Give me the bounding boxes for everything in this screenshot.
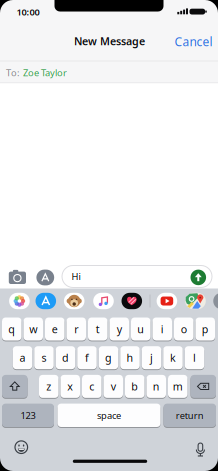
button[interactable]: Digital Touch (121, 293, 142, 309)
staticText: b (131, 379, 138, 393)
button[interactable]: p (195, 317, 215, 340)
button[interactable]: m (168, 375, 187, 398)
staticText: q (8, 322, 15, 336)
button[interactable]: Cancel (174, 33, 212, 49)
button[interactable]: Shift (2, 375, 27, 398)
button[interactable]: Emoji (15, 441, 28, 453)
button[interactable]: v (103, 375, 123, 398)
staticText: s (41, 351, 46, 365)
button[interactable]: Music (93, 293, 114, 309)
button[interactable]: o (174, 317, 193, 340)
button[interactable]: Dictation (195, 443, 206, 457)
staticText: o (181, 322, 187, 336)
staticText: w (29, 322, 37, 336)
button[interactable]: t (88, 317, 107, 340)
button[interactable]: e (45, 317, 64, 340)
button[interactable]: g (99, 346, 118, 369)
button[interactable]: Camera (7, 269, 28, 286)
staticText: d (62, 351, 69, 365)
button[interactable]: Send (190, 270, 206, 285)
staticText: f (85, 351, 89, 365)
staticText: k (170, 351, 176, 365)
staticText: return (176, 409, 204, 421)
staticText: 10:00 (16, 6, 39, 18)
button[interactable]: Photos (9, 293, 30, 309)
staticText: m (173, 379, 183, 393)
button[interactable]: l (185, 346, 204, 369)
button[interactable]: iMessage apps (35, 269, 55, 286)
button[interactable]: Delete (190, 375, 216, 398)
staticText: space (97, 409, 121, 421)
staticText: z (46, 379, 51, 393)
staticText: r (74, 322, 78, 336)
button[interactable]: u (131, 317, 150, 340)
button[interactable]: 123 (2, 404, 54, 427)
staticText: To: (6, 66, 20, 79)
button[interactable]: q (2, 317, 21, 340)
staticText: h (126, 351, 133, 365)
button[interactable]: Animoji (64, 293, 84, 309)
button[interactable]: f (77, 346, 97, 369)
button[interactable]: k (163, 346, 183, 369)
staticText: v (111, 379, 116, 393)
button[interactable]: d (56, 346, 75, 369)
button[interactable]: r (66, 317, 86, 340)
staticText: g (105, 351, 112, 365)
staticText: t (96, 322, 100, 336)
staticText: Hi (71, 270, 80, 282)
staticText: j (150, 351, 153, 365)
staticText: c (89, 379, 94, 393)
button[interactable]: b (125, 375, 144, 398)
button[interactable]: Maps (185, 293, 206, 309)
button[interactable]: space (57, 404, 160, 427)
staticText: Cancel (174, 33, 212, 49)
staticText: p (202, 322, 209, 336)
button[interactable]: c (82, 375, 101, 398)
staticText: n (153, 379, 160, 393)
staticText: New Message (74, 34, 145, 48)
button[interactable]: h (120, 346, 140, 369)
staticText: l (193, 351, 196, 365)
staticText: 123 (20, 409, 35, 421)
button[interactable]: s (34, 346, 54, 369)
staticText: e (52, 322, 58, 336)
button[interactable]: n (146, 375, 166, 398)
staticText: a (19, 351, 25, 365)
staticText: Zoe Taylor (23, 66, 67, 79)
staticText: x (67, 379, 73, 393)
button[interactable]: i (152, 317, 172, 340)
button[interactable]: a (13, 346, 32, 369)
button[interactable]: w (23, 317, 43, 340)
staticText: i (161, 322, 164, 336)
staticText: y (117, 322, 122, 336)
staticText: u (137, 322, 144, 336)
button[interactable]: x (60, 375, 80, 398)
button[interactable]: j (142, 346, 161, 369)
button[interactable]: YouTube (157, 293, 177, 309)
button[interactable]: return (163, 404, 216, 427)
button[interactable]: z (39, 375, 58, 398)
button[interactable]: App Store (35, 293, 56, 309)
button[interactable]: y (109, 317, 129, 340)
